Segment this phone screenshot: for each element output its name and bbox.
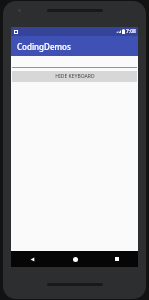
button[interactable] xyxy=(12,62,137,68)
staticText: CodingDemos xyxy=(17,41,71,52)
button[interactable]: Recent apps xyxy=(96,251,138,267)
button[interactable]: HIDE KEYBOARD xyxy=(12,71,137,82)
staticText: 7:08 xyxy=(126,28,136,35)
staticText: HIDE KEYBOARD xyxy=(55,73,95,80)
button[interactable]: Home xyxy=(54,251,96,267)
button[interactable]: Back xyxy=(11,251,54,267)
